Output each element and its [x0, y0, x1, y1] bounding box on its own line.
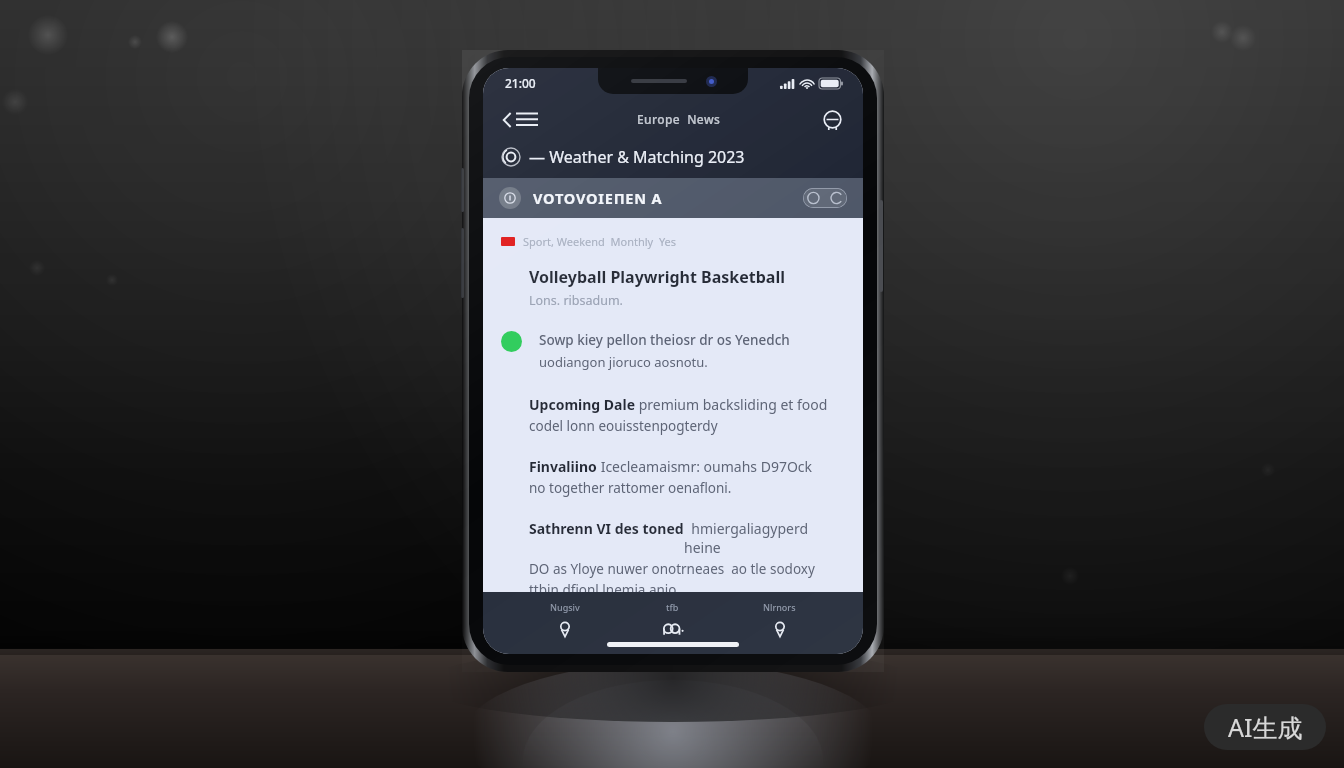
staticText: VOTOVOIEΠEN A: [533, 188, 663, 208]
staticText: codel lonn eouisstenpogterdy: [529, 417, 718, 435]
staticText: uodiangon jioruco aosnotu.: [539, 353, 708, 371]
staticText: Upcoming Dale: [529, 395, 635, 414]
staticText: Sowp kiey pellon theiosr dr os Yenedch: [539, 331, 790, 349]
button[interactable]: Upcoming Dale: [529, 395, 828, 435]
staticText: Volleyball Playwright Basketball: [529, 266, 785, 288]
staticText: Icecleamaismr: oumahs D97Ock: [597, 457, 813, 476]
button[interactable]: Nlrnors: [749, 599, 810, 640]
staticText: no together rattomer oenafloni.: [529, 479, 732, 497]
staticText: Lons. ribsadum.: [529, 292, 623, 309]
staticText: Nlrnors: [763, 601, 796, 613]
staticText: DO as Yloye nuwer onotrneaes ao tle sodo…: [529, 560, 815, 578]
button[interactable]: Volleyball Playwright Basketball: [529, 266, 785, 309]
button[interactable]: — Weather & Matching 2023: [501, 140, 845, 174]
staticText: tfb: [666, 601, 679, 613]
button[interactable]: Nugsiv: [536, 599, 594, 640]
button[interactable]: Sowp kiey pellon theiosr dr os Yenedch: [501, 331, 843, 371]
staticText: Europe News: [637, 111, 721, 127]
button[interactable]: Finvaliino: [529, 457, 813, 497]
staticText: Nugsiv: [550, 601, 580, 613]
staticText: hmiergaliagyperd heine: [684, 519, 843, 557]
button[interactable]: tfb: [647, 599, 697, 640]
button[interactable]: Sport, Weekend Monthly Yes: [501, 234, 677, 249]
button[interactable]: Back and menu: [499, 106, 542, 133]
staticText: Finvaliino: [529, 457, 597, 476]
staticText: Sathrenn VI des toned: [529, 519, 684, 538]
button[interactable]: Toggle: [803, 188, 847, 208]
staticText: AI生成: [1228, 710, 1303, 744]
button[interactable]: Account: [817, 104, 847, 134]
staticText: — Weather & Matching 2023: [529, 146, 745, 168]
staticText: ttbin dfionl lnemia anio..: [529, 581, 684, 592]
button[interactable]: Sathrenn VI des toned: [529, 519, 843, 592]
staticText: premium backsliding et food: [635, 395, 828, 414]
staticText: 21:00: [505, 75, 536, 91]
button[interactable]: VOTOVOIEΠEN A: [483, 178, 863, 218]
staticText: Sport, Weekend Monthly Yes: [523, 234, 677, 249]
